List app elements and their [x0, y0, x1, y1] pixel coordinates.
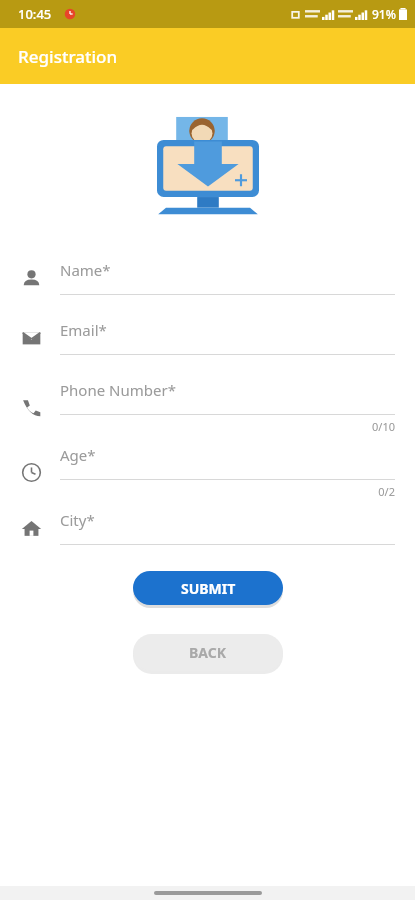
staticText: BACK: [189, 643, 227, 662]
staticText: 0/10: [60, 419, 395, 434]
staticText: Email*: [60, 320, 107, 340]
staticText: Phone Number*: [60, 380, 176, 400]
button[interactable]: BACK: [133, 634, 283, 671]
staticText: Name*: [60, 260, 111, 280]
button[interactable]: Email*: [0, 320, 415, 355]
button[interactable]: City*: [0, 510, 415, 545]
button[interactable]: Age*: [0, 445, 415, 499]
button[interactable]: Name*: [0, 260, 415, 295]
staticText: 0/2: [60, 484, 395, 499]
staticText: SUBMIT: [181, 579, 236, 598]
button[interactable]: SUBMIT: [133, 571, 283, 605]
button[interactable]: Phone Number*: [0, 380, 415, 434]
staticText: Age*: [60, 445, 96, 465]
staticText: 10:45: [18, 5, 52, 23]
staticText: City*: [60, 510, 95, 530]
other: Home gesture bar: [154, 891, 262, 895]
staticText: Registration: [18, 45, 118, 68]
staticText: 91%: [372, 6, 396, 22]
